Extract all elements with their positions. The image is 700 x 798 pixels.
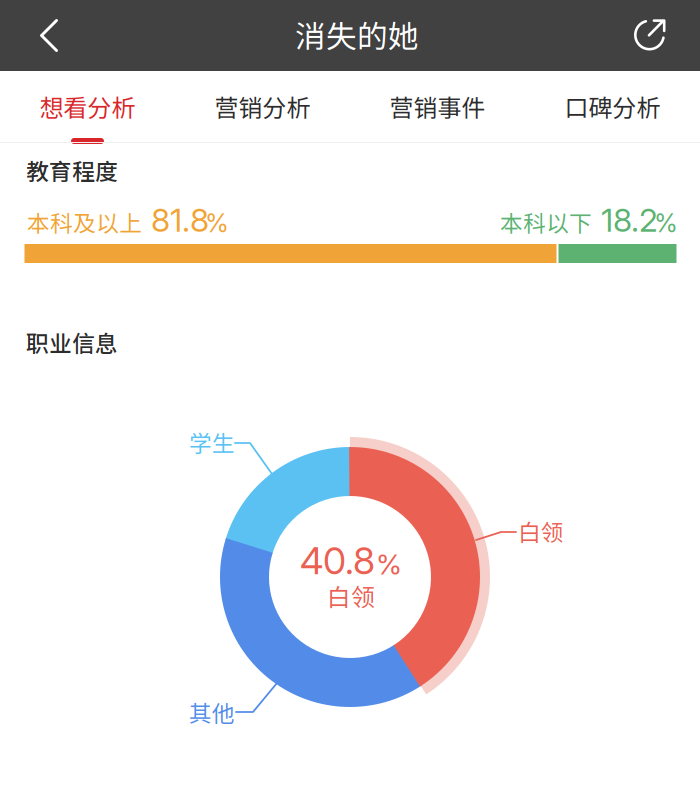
button[interactable]: 营销分析 [175, 71, 350, 144]
staticText: 学生 [189, 426, 235, 458]
staticText: 营销分析 [214, 89, 310, 124]
staticText: % [654, 208, 678, 238]
staticText: 消失的她 [295, 12, 419, 57]
staticText: 其他 [189, 696, 235, 728]
staticText: 81.8 [151, 201, 209, 239]
button[interactable]: 分享 [629, 0, 700, 71]
staticText: 口碑分析 [564, 89, 660, 124]
staticText: 职业信息 [26, 326, 118, 358]
staticText: 营销事件 [389, 89, 485, 124]
button[interactable]: 口碑分析 [525, 71, 700, 144]
button[interactable]: 返回 [0, 0, 73, 71]
staticText: 18.2 [601, 201, 658, 239]
staticText: % [205, 208, 229, 238]
button[interactable]: 营销事件 [350, 71, 525, 144]
staticText: 本科以下 [500, 205, 592, 238]
staticText: 40.8 [300, 538, 375, 583]
button[interactable]: 想看分析 [0, 71, 175, 144]
staticText: % [376, 547, 402, 581]
staticText: 想看分析 [39, 89, 135, 124]
staticText: 教育程度 [26, 154, 118, 186]
staticText: 本科及以上 [27, 205, 142, 238]
staticText: 白领 [518, 515, 564, 547]
staticText: 白领 [327, 578, 375, 613]
